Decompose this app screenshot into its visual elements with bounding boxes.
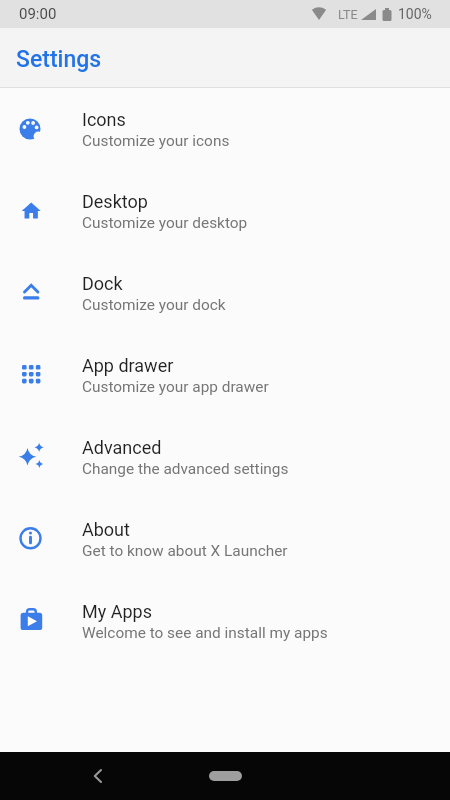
staticText: Get to know about X Launcher [82, 542, 288, 560]
button[interactable]: Advanced [0, 416, 450, 498]
button[interactable] [209, 771, 242, 781]
button[interactable]: My Apps [0, 580, 450, 662]
button[interactable]: About [0, 498, 450, 580]
staticText: 100% [398, 6, 432, 22]
staticText: LTE [338, 7, 358, 22]
button[interactable]: Desktop [0, 170, 450, 252]
staticText: Customize your dock [82, 296, 226, 314]
button[interactable] [81, 760, 113, 792]
staticText: About [82, 519, 130, 540]
staticText: Customize your app drawer [82, 378, 269, 396]
staticText: Change the advanced settings [82, 460, 289, 478]
staticText: Dock [82, 273, 123, 294]
staticText: Welcome to see and install my apps [82, 624, 328, 642]
staticText: Customize your icons [82, 132, 230, 150]
staticText: App drawer [82, 355, 174, 376]
staticText: Settings [16, 46, 102, 73]
staticText: Desktop [82, 191, 148, 212]
staticText: Icons [82, 109, 126, 130]
staticText: Advanced [82, 437, 162, 458]
staticText: 09:00 [19, 5, 57, 23]
staticText: Customize your desktop [82, 214, 248, 232]
button[interactable]: Dock [0, 252, 450, 334]
button[interactable]: App drawer [0, 334, 450, 416]
staticText: My Apps [82, 601, 152, 622]
button[interactable]: Icons [0, 88, 450, 170]
